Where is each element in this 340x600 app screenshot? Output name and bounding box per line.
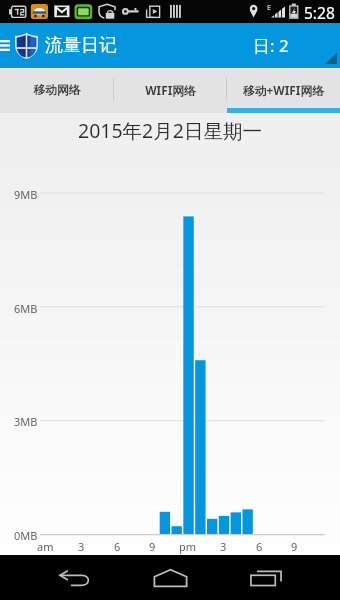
button[interactable]: 移动+WIFI网络: [227, 69, 340, 113]
staticText: 2015年2月2日星期一: [78, 117, 262, 144]
staticText: 5:28: [304, 2, 335, 23]
staticText: 3: [78, 539, 85, 554]
button[interactable]: Back: [28, 555, 123, 600]
button[interactable]: 移动网络: [0, 69, 114, 113]
staticText: am: [37, 539, 54, 554]
button[interactable]: Open navigation menu: [0, 23, 200, 68]
staticText: 3MB: [14, 414, 38, 429]
staticText: 3: [220, 539, 227, 554]
staticText: 移动+WIFI网络: [243, 82, 324, 98]
staticText: 6: [256, 539, 263, 554]
staticText: 6: [114, 539, 121, 554]
staticText: 9MB: [14, 187, 38, 202]
staticText: 9: [291, 539, 298, 554]
staticText: 6MB: [14, 301, 38, 316]
staticText: 0MB: [14, 528, 38, 543]
staticText: pm: [179, 539, 197, 554]
staticText: 日: 2: [253, 34, 289, 57]
staticText: WIFI网络: [145, 82, 196, 98]
staticText: 流量日记: [45, 34, 117, 57]
staticText: E: [267, 2, 272, 12]
button[interactable]: 日: 2: [253, 23, 340, 68]
button[interactable]: Recent apps: [218, 555, 313, 600]
button[interactable]: Home: [123, 555, 218, 600]
other: Open navigation menu: [0, 40, 10, 51]
staticText: 9: [149, 539, 156, 554]
button[interactable]: WIFI网络: [114, 69, 227, 113]
staticText: 移动网络: [33, 83, 81, 98]
